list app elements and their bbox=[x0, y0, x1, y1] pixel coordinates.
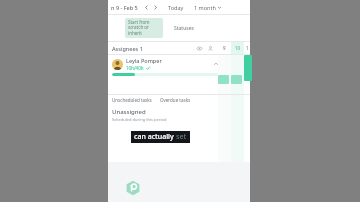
staticText: set bbox=[176, 132, 187, 142]
staticText: 1 bbox=[246, 45, 249, 51]
button[interactable]: Collapse bbox=[212, 60, 220, 68]
staticText: Assignees 1 bbox=[112, 45, 143, 52]
button[interactable]: Visibility bbox=[195, 44, 203, 52]
staticText: Overdue tasks bbox=[160, 97, 191, 103]
button[interactable]: Next period bbox=[151, 3, 160, 12]
button[interactable]: Leyla Pomper bbox=[108, 55, 250, 73]
staticText: can actually bbox=[134, 132, 176, 142]
button[interactable]: People bbox=[206, 44, 214, 52]
staticText: Today bbox=[168, 4, 184, 11]
staticText: Leyla Pomper bbox=[126, 57, 162, 64]
button[interactable]: Previous period bbox=[142, 3, 151, 12]
staticText: Unassigned bbox=[112, 108, 146, 116]
staticText: Start from scratch or inherit bbox=[128, 19, 150, 37]
button[interactable]: Paymo logo bbox=[125, 180, 141, 196]
staticText: Scheduled during this period bbox=[112, 117, 167, 122]
button[interactable]: Today bbox=[166, 3, 186, 12]
staticText: Unscheduled tasks bbox=[112, 97, 152, 103]
button[interactable]: Overdue tasks bbox=[160, 96, 191, 104]
staticText: 10h/40h bbox=[126, 65, 144, 71]
staticText: 1 month bbox=[194, 4, 216, 11]
staticText: Statuses bbox=[174, 25, 194, 32]
button[interactable]: Statuses bbox=[171, 23, 215, 34]
button[interactable]: 1 month bbox=[192, 3, 223, 12]
button[interactable]: Unscheduled tasks bbox=[112, 96, 152, 104]
staticText: 9 bbox=[223, 45, 226, 51]
staticText: 10 bbox=[235, 45, 241, 51]
button[interactable]: Start from scratch or inherit bbox=[125, 18, 163, 38]
staticText: n 9 - Feb 5 bbox=[111, 4, 138, 11]
